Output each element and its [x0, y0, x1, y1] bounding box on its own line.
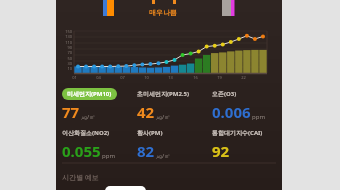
staticText: 130 [59, 34, 72, 39]
staticText: 황사(PM) [137, 129, 163, 137]
staticText: 30 [59, 61, 72, 66]
staticText: 13 [166, 75, 175, 80]
staticText: ㎍/㎥ [81, 113, 96, 121]
button[interactable]: 미세먼지(PM10) [62, 88, 137, 122]
staticText: 초미세먼지(PM2.5) [137, 90, 190, 98]
staticText: 92 [212, 141, 230, 161]
button[interactable]: 통합대기지수(CAI) [212, 127, 282, 161]
staticText: 오존(O3) [212, 90, 237, 98]
staticText: 10 [142, 75, 151, 80]
staticText: 16 [191, 75, 200, 80]
staticText: 통합대기지수(CAI) [212, 129, 263, 137]
staticText: ppm [252, 113, 265, 121]
staticText: 04 [94, 75, 103, 80]
staticText: 이산화질소(NO2) [62, 129, 110, 137]
staticText: 22 [239, 75, 248, 80]
button[interactable]: 황사(PM) [137, 127, 212, 161]
staticText: 82 [137, 141, 155, 161]
button[interactable]: 초미세먼지(PM2.5) [137, 88, 212, 122]
staticText: 90 [59, 45, 72, 50]
staticText: 0.055 [62, 141, 101, 161]
staticText: 150 [59, 29, 72, 34]
staticText: 07 [118, 75, 127, 80]
staticText: 19 [215, 75, 224, 80]
staticText: 01 [70, 75, 79, 80]
staticText: 매우나쁨 [149, 8, 177, 17]
staticText: 77 [62, 102, 80, 122]
staticText: 110 [59, 40, 72, 45]
button[interactable]: Selected tab [105, 186, 146, 190]
staticText: ㎍/㎥ [156, 113, 171, 121]
staticText: 70 [59, 50, 72, 55]
staticText: ㎍/㎥ [156, 152, 171, 160]
button[interactable]: 이산화질소(NO2) [62, 127, 137, 161]
staticText: 0.006 [212, 102, 251, 122]
staticText: 42 [137, 102, 155, 122]
staticText: 미세먼지(PM10) [67, 90, 112, 98]
staticText: 50 [59, 56, 72, 61]
staticText: 시간별 예보 [62, 173, 99, 183]
staticText: ppm [102, 152, 115, 160]
staticText: 10 [59, 66, 72, 71]
button[interactable]: 오존(O3) [212, 88, 282, 122]
